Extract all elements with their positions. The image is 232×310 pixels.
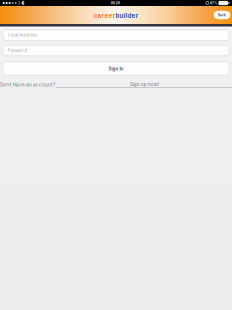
- staticText: 09:29: [111, 1, 120, 5]
- staticText: 87%: [210, 1, 217, 5]
- staticText: Don't Have an account?: [0, 82, 55, 87]
- staticText: builder: [115, 10, 138, 20]
- staticText: Back: [218, 13, 226, 17]
- button[interactable]: Sign up now!: [56, 82, 232, 88]
- button[interactable]: Sign In: [0, 62, 232, 76]
- button[interactable]: Back: [214, 11, 230, 19]
- staticText: career: [93, 10, 115, 20]
- staticText: Sign up now!: [130, 82, 159, 87]
- staticText: Email Address: [7, 33, 36, 38]
- staticText: Password: [7, 48, 27, 53]
- staticText: 3: [18, 1, 20, 5]
- staticText: Sign In: [108, 66, 123, 71]
